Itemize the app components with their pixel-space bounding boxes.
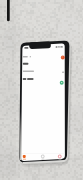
button[interactable] (22, 68, 65, 86)
button[interactable] (22, 153, 35, 161)
button[interactable] (36, 153, 49, 161)
button[interactable] (22, 54, 34, 59)
button[interactable] (51, 153, 64, 161)
button[interactable] (57, 52, 68, 62)
